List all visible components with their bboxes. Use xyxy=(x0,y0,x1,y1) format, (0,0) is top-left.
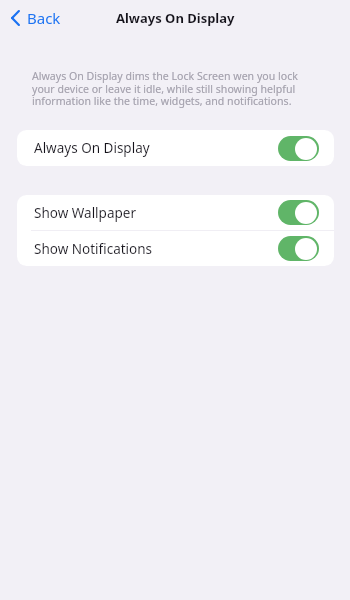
staticText: Show Wallpaper xyxy=(34,204,136,222)
staticText: Show Notifications xyxy=(34,240,153,258)
button[interactable]: Always On Display switch xyxy=(278,136,319,161)
button[interactable]: Show Notifications xyxy=(17,231,334,266)
button[interactable]: Show Wallpaper switch xyxy=(278,200,319,225)
button[interactable]: Always On Display xyxy=(17,130,334,166)
staticText: Always On Display xyxy=(116,9,235,27)
staticText: Back xyxy=(27,8,61,28)
staticText: Always On Display xyxy=(34,139,150,157)
button[interactable]: Show Notifications switch xyxy=(278,236,319,261)
button[interactable]: Back xyxy=(6,5,67,31)
button[interactable]: Show Wallpaper xyxy=(17,195,334,230)
staticText: Always On Display dims the Lock Screen w… xyxy=(32,69,304,108)
